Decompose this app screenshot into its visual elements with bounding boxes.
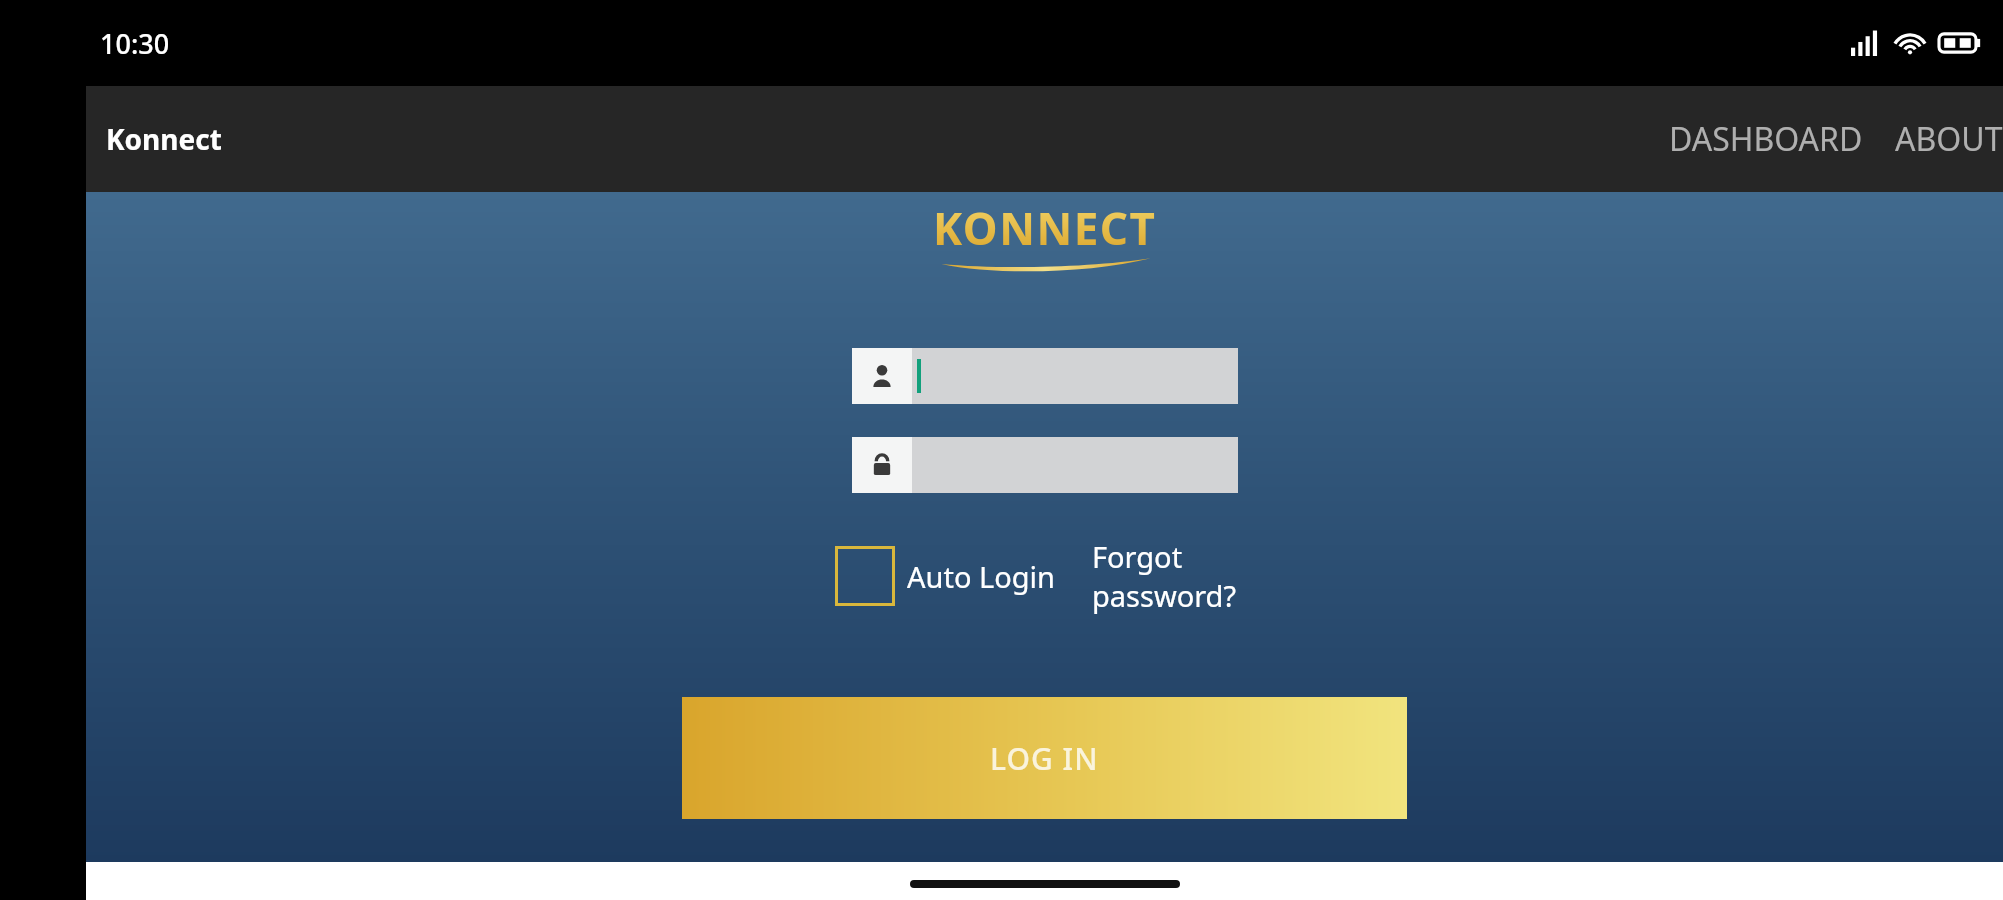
staticText: ABOUT	[1895, 117, 2003, 161]
button[interactable]: Auto Login	[905, 549, 1057, 604]
button[interactable]: Password	[852, 437, 1238, 493]
button[interactable]: Forgot password?	[1090, 529, 1255, 623]
button[interactable]: DASHBOARD	[1653, 101, 1879, 177]
button[interactable]: ABOUT	[1879, 101, 2003, 177]
button[interactable]: LOG IN	[682, 697, 1407, 819]
staticText: Auto Login	[907, 557, 1055, 596]
staticText: 10:30	[100, 25, 170, 62]
button[interactable]: Username	[852, 348, 1238, 404]
staticText: LOG IN	[990, 738, 1099, 779]
button[interactable]: Auto Login checkbox	[835, 546, 895, 606]
button[interactable]: Konnect	[86, 110, 242, 168]
staticText: DASHBOARD	[1669, 117, 1863, 161]
staticText: KONNECT	[933, 198, 1157, 258]
staticText: Forgot password?	[1092, 537, 1253, 615]
staticText: Konnect	[106, 120, 222, 158]
